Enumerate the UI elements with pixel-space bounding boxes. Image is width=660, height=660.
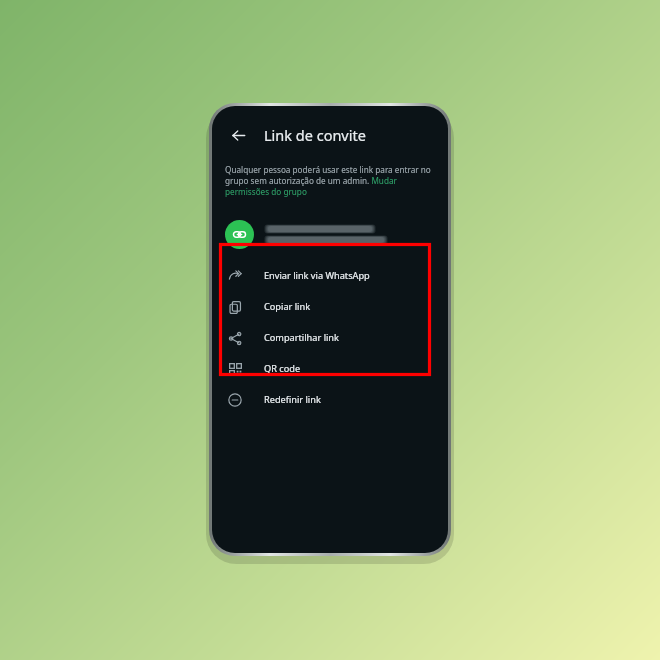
button[interactable]: Copiar link [212, 291, 448, 322]
button[interactable] [212, 211, 448, 257]
staticText: QR code [264, 362, 301, 375]
button[interactable]: Compartilhar link [212, 322, 448, 353]
staticText: Enviar link via WhatsApp [264, 269, 370, 282]
staticText: Qualquer pessoa poderá usar este link pa… [225, 164, 435, 197]
staticText: Compartilhar link [264, 331, 339, 344]
button[interactable]: QR code [212, 353, 448, 384]
staticText: Copiar link [264, 300, 311, 313]
staticText: Redefinir link [264, 393, 321, 406]
button[interactable]: Back [224, 121, 252, 149]
button[interactable]: Enviar link via WhatsApp [212, 260, 448, 291]
staticText: Link de convite [264, 125, 366, 145]
button[interactable]: Redefinir link [212, 384, 448, 415]
